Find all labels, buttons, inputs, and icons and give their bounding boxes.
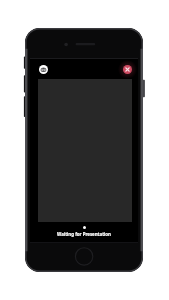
button[interactable]: End presentation xyxy=(123,65,132,74)
staticText: Waiting for Presentation xyxy=(57,231,111,237)
button[interactable]: Switch camera xyxy=(39,65,48,74)
